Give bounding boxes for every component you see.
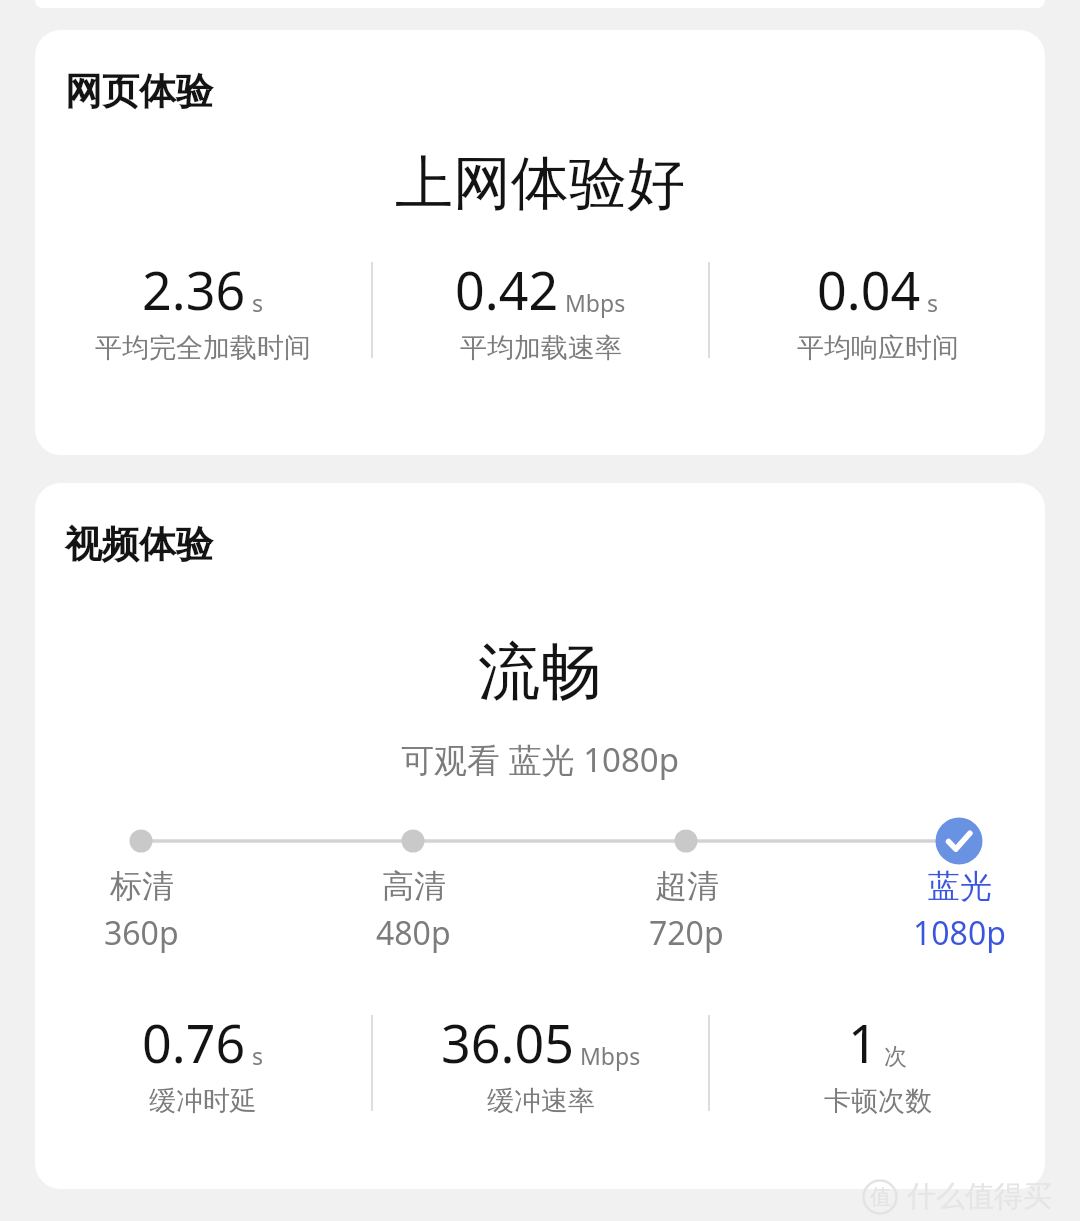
staticText: 卡顿次数: [824, 1084, 932, 1118]
staticText: 次: [884, 1042, 907, 1071]
button[interactable]: 0.42: [373, 254, 708, 365]
staticText: 480p: [376, 911, 451, 955]
staticText: Mbps: [565, 287, 626, 318]
staticText: 0.04: [817, 254, 921, 325]
button[interactable]: 高清 480p: [376, 866, 451, 955]
staticText: 蓝光: [928, 866, 992, 906]
staticText: 平均加载速率: [460, 331, 622, 365]
staticText: 什么值得买: [907, 1178, 1052, 1215]
staticText: 0.76: [142, 1007, 246, 1078]
staticText: s: [927, 287, 939, 318]
button[interactable]: 蓝光 1080p: [913, 866, 1006, 955]
staticText: 缓冲时延: [149, 1084, 257, 1118]
button[interactable]: 36.05: [373, 1007, 708, 1118]
button[interactable]: 2.36: [35, 254, 371, 365]
staticText: 值: [870, 1184, 891, 1210]
staticText: 网页体验: [65, 68, 213, 115]
staticText: 上网体验好: [35, 147, 1045, 220]
button[interactable]: 超清 720p: [649, 866, 724, 955]
staticText: 1: [848, 1007, 878, 1078]
staticText: 360p: [104, 911, 179, 955]
staticText: 720p: [649, 911, 724, 955]
staticText: 缓冲速率: [487, 1084, 595, 1118]
staticText: 超清: [655, 866, 719, 906]
staticText: s: [252, 287, 264, 318]
staticText: 36.05: [441, 1007, 574, 1078]
staticText: 高清: [382, 866, 446, 906]
button[interactable]: 1: [710, 1007, 1045, 1118]
staticText: 标清: [110, 866, 174, 906]
staticText: 0.42: [455, 254, 559, 325]
button[interactable]: 0.76: [35, 1007, 371, 1118]
staticText: 平均完全加载时间: [95, 331, 311, 365]
staticText: Mbps: [580, 1040, 641, 1071]
staticText: s: [252, 1040, 264, 1071]
staticText: 视频体验: [65, 521, 213, 568]
staticText: 可观看 蓝光 1080p: [35, 737, 1045, 782]
staticText: 流畅: [35, 633, 1045, 711]
staticText: 1080p: [913, 911, 1006, 955]
button[interactable]: 0.04: [710, 254, 1045, 365]
staticText: 2.36: [142, 254, 246, 325]
button[interactable]: 标清 360p: [104, 866, 179, 955]
button[interactable]: 视频体验: [35, 483, 1045, 1189]
staticText: 平均响应时间: [797, 331, 959, 365]
button[interactable]: 网页体验: [35, 30, 1045, 455]
